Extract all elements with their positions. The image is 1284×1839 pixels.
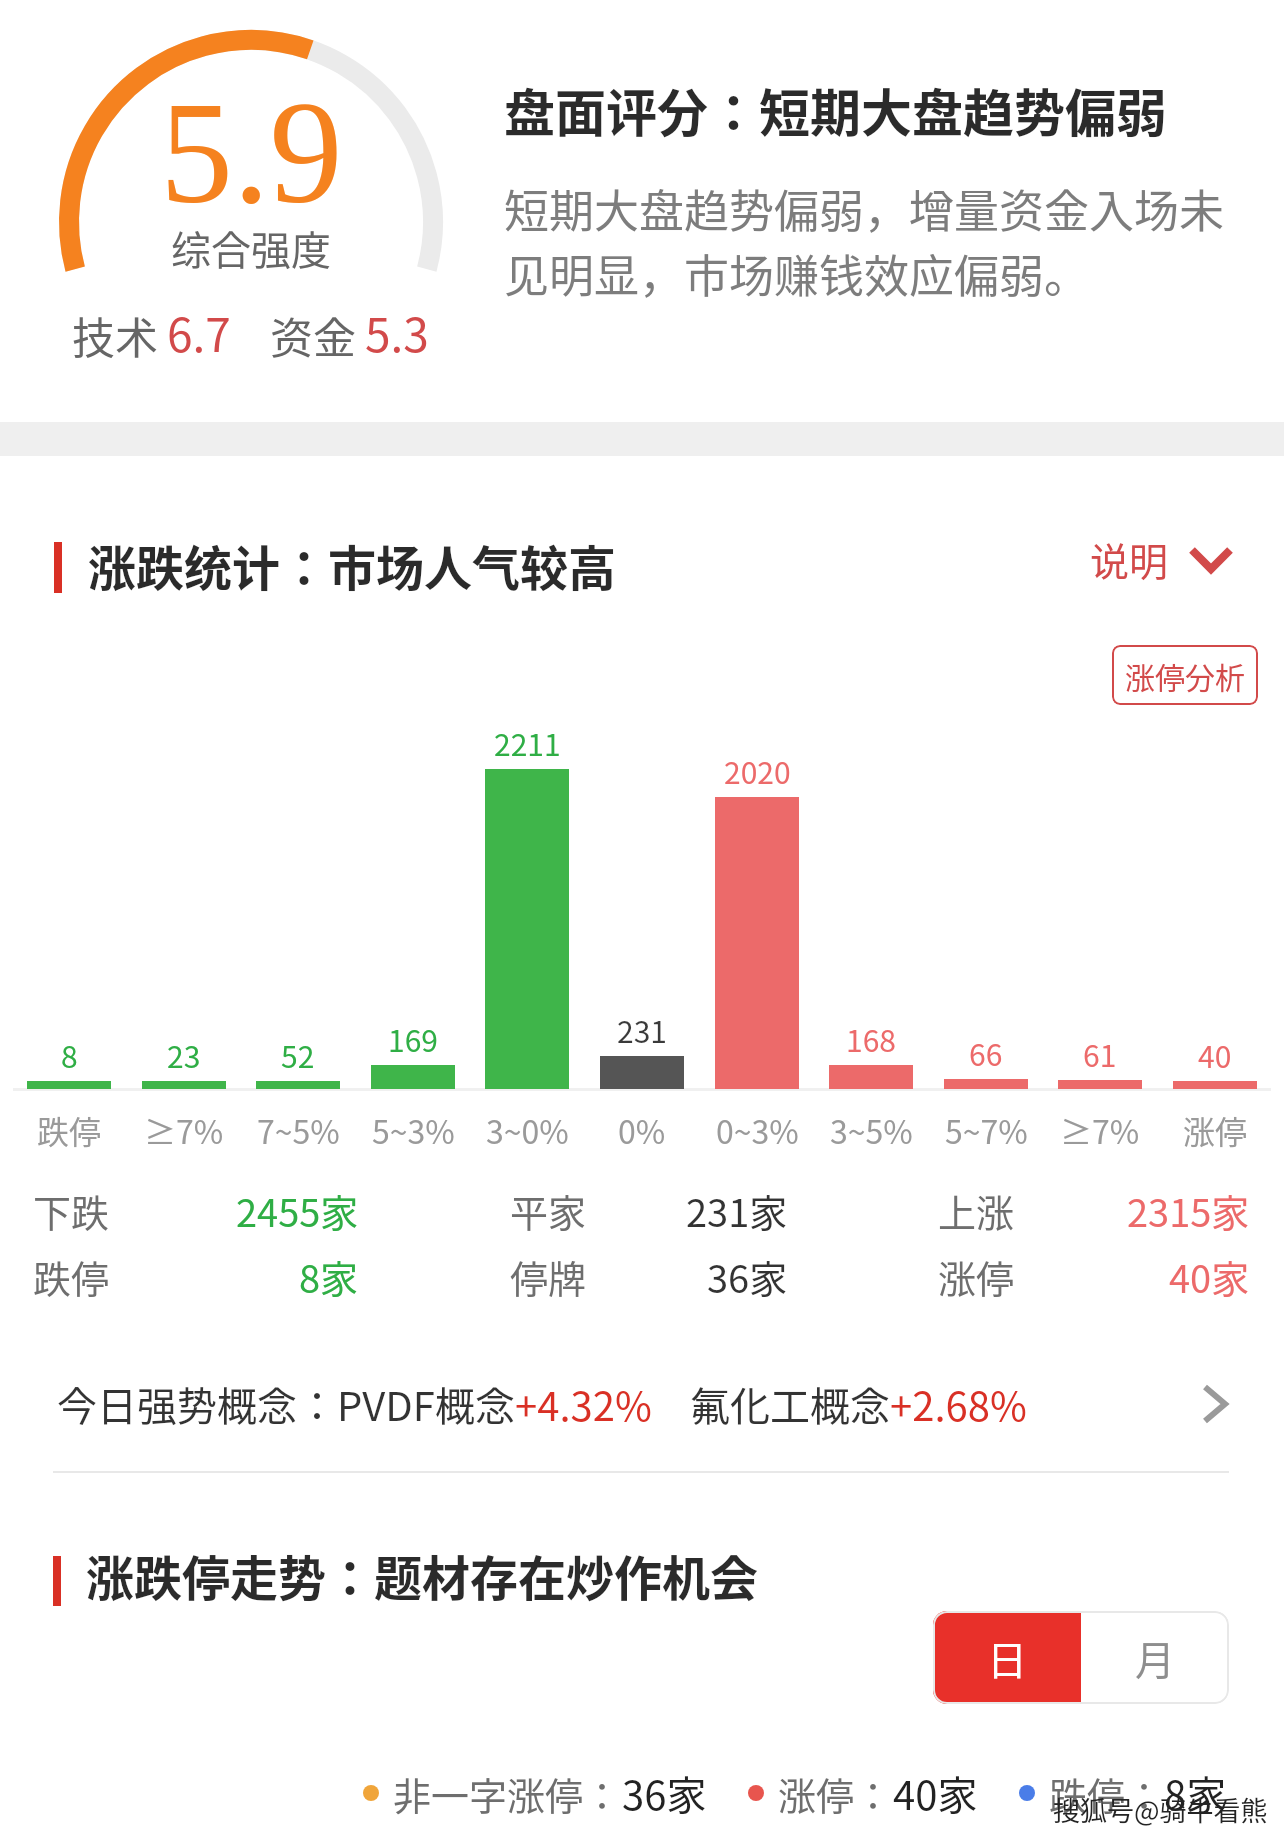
staticText: 40 [1198,1033,1232,1076]
staticText: +2.68% [890,1375,1027,1433]
staticText: 61 [1083,1032,1117,1075]
staticText: 36家 [622,1764,707,1822]
staticText: 说明 [1090,531,1169,587]
staticText: 停牌 [510,1249,587,1304]
staticText: 2315家 [1127,1183,1250,1238]
staticText: 跌停： [1049,1766,1164,1821]
staticText: 月 [1135,1629,1175,1687]
staticText: 8家 [1164,1764,1227,1822]
staticText: 上涨 [938,1183,1015,1238]
staticText: 短期大盘趋势偏弱，增量资金入场未见明显，市场赚钱效应偏弱。 [504,176,1244,306]
staticText: 0% [618,1107,666,1153]
staticText: 盘面评分：短期大盘趋势偏弱 [504,73,1168,147]
staticText: 资金 [270,304,356,366]
staticText: 36家 [707,1249,788,1304]
staticText: 搜狐号@骑牛看熊 [1053,1790,1268,1829]
button[interactable]: 月 [1081,1611,1229,1704]
staticText: 涨停 [938,1249,1015,1304]
staticText: 今日强势概念： [57,1375,337,1433]
staticText: 8 [61,1033,78,1076]
staticText: 5~7% [945,1107,1028,1153]
staticText: 下跌 [33,1183,110,1238]
staticText: 52 [281,1033,315,1076]
staticText: 涨停分析 [1125,654,1245,697]
staticText: 非一字涨停： [393,1766,622,1821]
staticText: 3~0% [486,1107,569,1153]
staticText: 平家 [510,1183,587,1238]
staticText: 66 [969,1031,1003,1074]
staticText: 8家 [299,1249,359,1304]
staticText: 40家 [893,1764,978,1822]
staticText: 5.3 [365,299,429,366]
staticText: 跌停 [37,1107,102,1153]
staticText: 0~3% [716,1107,799,1153]
staticText: 跌停 [33,1249,110,1304]
staticText: 综合强度 [171,219,331,277]
staticText: 7~5% [257,1107,340,1153]
staticText: ≥7% [144,1107,224,1153]
button[interactable]: 今日强势概念： [0,1366,1284,1442]
staticText: 23 [167,1033,201,1076]
button[interactable]: 说明 [1090,531,1233,587]
staticText: 6.7 [167,299,231,366]
staticText: 5~3% [372,1107,455,1153]
staticText: 2211 [494,721,561,764]
staticText: 168 [846,1017,896,1060]
staticText: 231 [617,1008,667,1051]
staticText: 技术 [72,304,158,366]
other: More [1202,1384,1228,1424]
staticText: 2020 [724,749,791,792]
staticText: +4.32% [515,1375,652,1433]
staticText: ≥7% [1060,1107,1140,1153]
staticText: 5.9 [160,72,343,234]
staticText: 涨停 [1183,1107,1248,1153]
staticText: 涨跌统计：市场人气较高 [88,530,617,600]
staticText: 氟化工概念 [690,1375,890,1433]
staticText: 2455家 [236,1183,359,1238]
staticText: PVDF概念 [337,1375,515,1433]
staticText: 40家 [1169,1249,1250,1304]
staticText: 3~5% [830,1107,913,1153]
button[interactable]: 日 [933,1611,1081,1704]
button[interactable]: 涨停分析 [1112,645,1258,705]
staticText: 169 [388,1017,438,1060]
staticText: 231家 [686,1183,788,1238]
staticText: 日 [987,1629,1027,1687]
staticText: 涨停： [778,1766,893,1821]
staticText: 涨跌停走势：题材存在炒作机会 [86,1540,759,1610]
